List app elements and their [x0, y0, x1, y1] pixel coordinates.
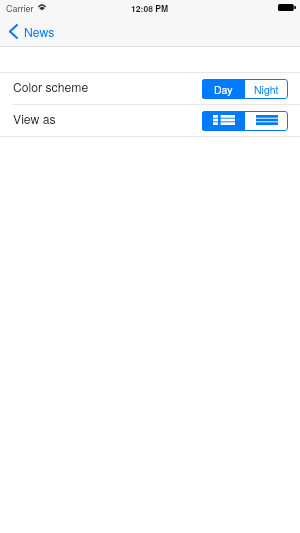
button[interactable]: Night — [245, 79, 288, 99]
staticText: News — [24, 23, 55, 40]
button[interactable]: Day — [202, 79, 245, 99]
staticText: 12:08 PM — [131, 2, 169, 14]
staticText: Carrier — [6, 2, 34, 15]
button[interactable]: Compact view — [245, 111, 288, 131]
button[interactable]: List view — [202, 111, 245, 131]
staticText: View as — [13, 110, 56, 127]
staticText: Color scheme — [13, 78, 89, 95]
staticText: Day — [214, 82, 233, 97]
staticText: Night — [254, 82, 279, 97]
button[interactable]: Back to News — [0, 16, 55, 46]
button[interactable]: Color scheme — [0, 73, 300, 104]
button[interactable]: View as — [0, 105, 300, 136]
